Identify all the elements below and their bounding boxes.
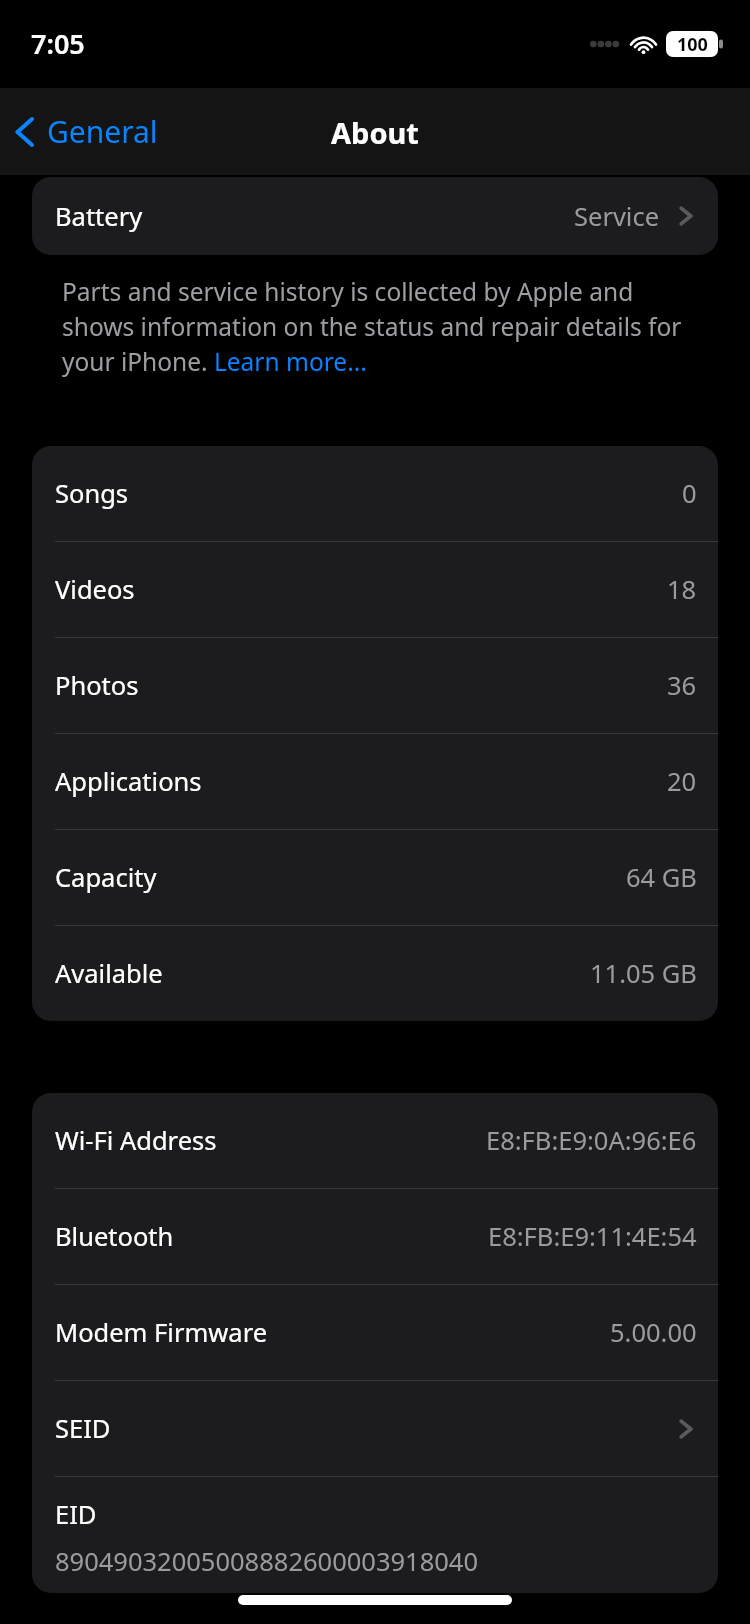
staticText: Songs bbox=[55, 476, 129, 511]
button[interactable]: Songs bbox=[32, 446, 718, 541]
staticText: General bbox=[47, 111, 158, 152]
button[interactable]: Applications bbox=[32, 734, 718, 829]
staticText: 11.05 GB bbox=[590, 956, 697, 991]
staticText: 36 bbox=[667, 668, 697, 703]
button[interactable]: Bluetooth bbox=[32, 1189, 718, 1284]
button[interactable]: Available bbox=[32, 926, 718, 1021]
staticText: 7:05 bbox=[31, 25, 85, 62]
staticText: 18 bbox=[667, 572, 697, 607]
staticText: 5.00.00 bbox=[610, 1315, 697, 1350]
staticText: Capacity bbox=[55, 860, 157, 895]
staticText: 0 bbox=[682, 476, 697, 511]
staticText: Bluetooth bbox=[55, 1219, 174, 1254]
button[interactable]: SEID bbox=[32, 1381, 718, 1476]
staticText: 64 GB bbox=[626, 860, 697, 895]
staticText: Parts and service history is collected b… bbox=[62, 275, 700, 378]
staticText: Wi-Fi Address bbox=[55, 1123, 217, 1158]
staticText: Applications bbox=[55, 764, 202, 799]
staticText: 100 bbox=[677, 32, 708, 57]
staticText: 20 bbox=[667, 764, 697, 799]
staticText: E8:FB:E9:11:4E:54 bbox=[488, 1219, 697, 1254]
staticText: Available bbox=[55, 956, 163, 991]
button[interactable]: Battery bbox=[32, 177, 718, 255]
staticText: Videos bbox=[55, 572, 135, 607]
button[interactable]: Videos bbox=[32, 542, 718, 637]
staticText: EID bbox=[55, 1497, 97, 1532]
staticText: E8:FB:E9:0A:96:E6 bbox=[486, 1123, 697, 1158]
staticText: Photos bbox=[55, 668, 139, 703]
button[interactable]: EID bbox=[32, 1477, 718, 1593]
staticText: SEID bbox=[55, 1411, 111, 1446]
button[interactable]: Photos bbox=[32, 638, 718, 733]
staticText: Modem Firmware bbox=[55, 1315, 268, 1350]
staticText: Service bbox=[574, 199, 660, 234]
staticText: Battery bbox=[55, 199, 143, 234]
staticText: About bbox=[331, 113, 419, 152]
button[interactable]: Capacity bbox=[32, 830, 718, 925]
staticText: 89049032005008882600003918040 bbox=[55, 1544, 697, 1579]
other: Back bbox=[14, 113, 36, 151]
button[interactable]: Wi-Fi Address bbox=[32, 1093, 718, 1188]
button[interactable]: Modem Firmware bbox=[32, 1285, 718, 1380]
button[interactable]: Back bbox=[0, 105, 168, 158]
